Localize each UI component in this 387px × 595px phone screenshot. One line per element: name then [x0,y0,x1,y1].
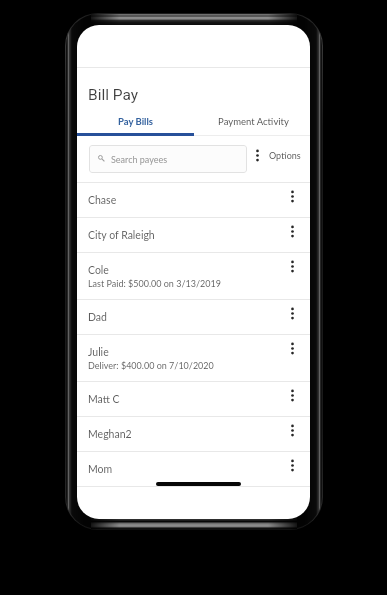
button[interactable]: Search payees [89,145,247,173]
staticText: Bill Pay [88,86,139,104]
other: More options for Dad [287,307,298,320]
other: More options for Mom [287,459,298,472]
staticText: Mom [88,463,113,476]
staticText: Chase [88,194,117,207]
button[interactable]: More options for City of Raleigh [77,218,310,252]
other: More options for Julie [287,342,298,355]
staticText: Cole [88,264,109,277]
button[interactable]: More options for Cole [77,253,310,299]
button[interactable]: More options for Chase [287,190,298,203]
other: More options for City of Raleigh [287,225,298,238]
staticText: City of Raleigh [88,229,155,242]
other: More options for Chase [287,190,298,203]
other: More options for Meghan2 [287,424,298,437]
button[interactable]: More options for Mom [77,452,310,486]
staticText: Julie [88,346,109,359]
other: More options [252,149,263,162]
button[interactable]: More options for Cole [287,260,298,273]
staticText: Deliver: $400.00 on 7/10/2020 [88,360,214,371]
button[interactable]: More options for Meghan2 [77,417,310,451]
staticText: Matt C [88,393,120,406]
button[interactable]: More options for Mom [287,459,298,472]
other: More options for Cole [287,260,298,273]
button[interactable]: More options for Meghan2 [287,424,298,437]
staticText: Options [269,150,301,161]
staticText: Search payees [111,154,168,165]
button[interactable]: More options for City of Raleigh [287,225,298,238]
button[interactable]: More options for Julie [77,335,310,381]
staticText: Payment Activity [218,116,289,127]
other: More options for Matt C [287,389,298,402]
staticText: Meghan2 [88,428,132,441]
staticText: Pay Bills [118,116,153,127]
button[interactable]: More options for Julie [287,342,298,355]
button[interactable]: More options for Dad [287,307,298,320]
button[interactable]: More options for Matt C [287,389,298,402]
button[interactable]: More options [252,132,301,178]
button[interactable]: More options for Dad [77,300,310,334]
staticText: Last Paid: $500.00 on 3/13/2019 [88,278,221,289]
staticText: Dad [88,311,107,324]
button[interactable]: Payment Activity [193,108,310,133]
button[interactable]: Pay Bills [77,108,193,133]
button[interactable]: More options for Matt C [77,382,310,416]
button[interactable]: More options for Chase [77,183,310,217]
